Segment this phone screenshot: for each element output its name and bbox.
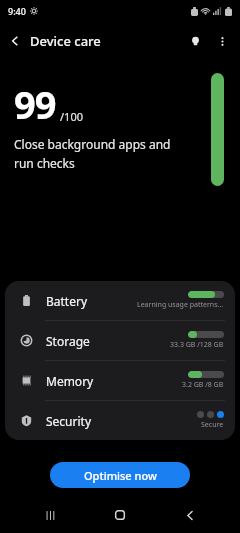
button[interactable]: Optimise now <box>50 462 190 488</box>
button[interactable]: Battery <box>5 281 235 320</box>
button[interactable]: Back <box>170 497 210 533</box>
button[interactable]: Recents <box>30 497 70 533</box>
button[interactable]: Tips <box>182 28 208 54</box>
button[interactable]: Storage <box>5 321 235 360</box>
staticText: run checks <box>14 155 75 171</box>
staticText: Close background apps and <box>14 136 171 152</box>
staticText: 9:40 <box>8 5 26 17</box>
button[interactable]: Back <box>0 26 30 56</box>
staticText: Optimise now <box>84 468 157 483</box>
staticText: 3.2 GB /8 GB <box>182 380 224 390</box>
staticText: Secure <box>201 420 224 430</box>
staticText: Battery <box>46 293 88 309</box>
staticText: Security <box>46 413 92 429</box>
button[interactable]: Home <box>100 497 140 533</box>
staticText: Learning usage patterns... <box>137 300 224 310</box>
staticText: Device care <box>30 32 101 50</box>
button[interactable]: More options <box>208 27 236 55</box>
staticText: /100 <box>60 109 83 124</box>
staticText: 99 <box>14 78 56 130</box>
staticText: Storage <box>46 333 90 349</box>
staticText: Memory <box>46 373 94 389</box>
button[interactable]: Memory <box>5 361 235 400</box>
staticText: 33.3 GB /128 GB <box>170 340 224 350</box>
button[interactable]: Security <box>5 401 235 440</box>
